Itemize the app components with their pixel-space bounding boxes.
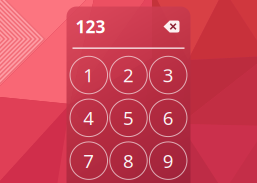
button[interactable]: 2	[110, 56, 147, 94]
button[interactable]: 1	[70, 56, 107, 94]
staticText: 6	[163, 105, 174, 130]
staticText: 1	[83, 63, 94, 87]
staticText: 4	[83, 105, 94, 130]
button[interactable]: 6	[149, 99, 187, 137]
staticText: 9	[163, 148, 174, 173]
button[interactable]: 9	[149, 142, 187, 179]
staticText: 2	[123, 63, 134, 87]
button[interactable]: 3	[149, 56, 187, 94]
staticText: 8	[123, 148, 134, 173]
button[interactable]: 4	[70, 99, 107, 137]
staticText: 3	[163, 63, 174, 87]
button[interactable]: Delete	[161, 16, 181, 36]
button[interactable]: 8	[110, 142, 147, 179]
staticText: 7	[83, 148, 94, 173]
button[interactable]: 7	[70, 142, 107, 179]
button[interactable]: 5	[110, 99, 147, 137]
staticText: 123	[75, 15, 105, 38]
staticText: 5	[123, 105, 134, 130]
